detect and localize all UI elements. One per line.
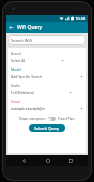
- button[interactable]: Toggle mode: [48, 117, 56, 121]
- button[interactable]: Submit Query: [29, 124, 65, 132]
- staticText: Fixed Plan: [58, 116, 75, 121]
- staticText: example.example@example.com: [11, 106, 45, 111]
- staticText: Radio: [11, 83, 21, 88]
- staticText: Search Wifi: [11, 38, 32, 43]
- button[interactable]: Email: [11, 99, 83, 112]
- button[interactable]: Navigate up: [6, 22, 17, 33]
- staticText: Wifi Query: [17, 24, 43, 31]
- button[interactable]: Brand: [11, 51, 83, 64]
- staticText: Submit Query: [34, 126, 60, 131]
- staticText: Email: [11, 99, 20, 104]
- staticText: Brand: [11, 51, 21, 56]
- button[interactable]: Home: [42, 155, 53, 166]
- staticText: Full Wideband: [11, 90, 34, 95]
- button[interactable]: Radio: [11, 83, 83, 96]
- staticText: Down-exception: [19, 116, 46, 121]
- button[interactable]: Recent apps: [65, 155, 76, 166]
- button[interactable]: Back: [18, 155, 29, 166]
- staticText: Select All: [11, 58, 26, 63]
- button[interactable]: Model: [11, 67, 83, 80]
- staticText: Add Specific Search (All Models Found): [11, 74, 45, 79]
- staticText: Model: [11, 67, 22, 72]
- button[interactable]: Search Wifi: [8, 35, 86, 45]
- staticText: 10:58: [75, 16, 86, 21]
